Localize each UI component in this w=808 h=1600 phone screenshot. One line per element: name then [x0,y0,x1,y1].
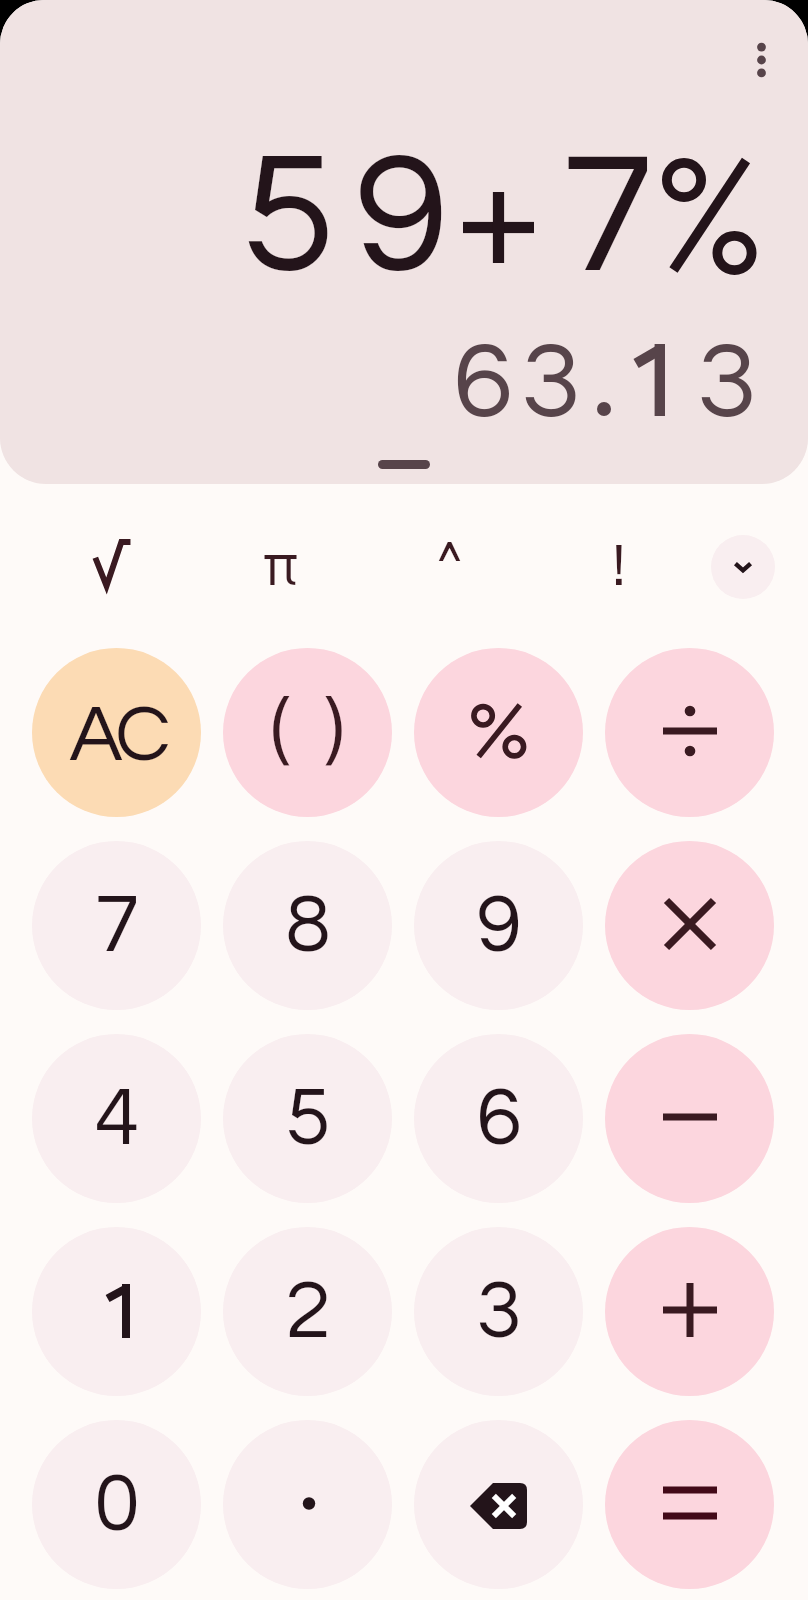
staticText: ! [612,536,626,598]
staticText: 6 [453,327,513,438]
button[interactable]: 2 [223,1227,392,1396]
button[interactable]: Show more functions [711,535,775,599]
button[interactable]: 7 [32,841,201,1010]
staticText: 4 [94,1077,140,1161]
button[interactable]: Multiply [605,841,774,1010]
button[interactable]: Percent [414,648,583,817]
button[interactable]: ^ [365,484,534,650]
staticText: 3 [697,327,757,438]
button[interactable]: 4 [32,1034,201,1203]
staticText: 8 [285,884,331,968]
button[interactable]: Add [605,1227,774,1396]
staticText: 5 [241,130,336,306]
button[interactable]: 9 [414,841,583,1010]
button[interactable]: Equals [605,1420,774,1589]
staticText: 3 [521,327,581,438]
button[interactable]: 8 [223,841,392,1010]
button[interactable]: π [196,484,365,650]
staticText: 0 [94,1463,140,1547]
staticText: 3 [476,1270,522,1354]
button[interactable]: 1 [32,1227,201,1396]
button[interactable]: ( ) [223,648,392,817]
staticText: 9 [476,884,522,968]
button[interactable]: Divide [605,648,774,817]
staticText: ( ) [270,686,353,771]
button[interactable]: More options [724,23,797,96]
staticText: ^ [434,534,465,596]
staticText: 7 [94,884,140,968]
button[interactable]: AC [32,648,201,817]
button[interactable]: 0 [32,1420,201,1589]
button[interactable]: 5 [223,1034,392,1203]
staticText: 2 [285,1270,331,1354]
button[interactable]: Backspace [414,1420,583,1589]
staticText: 9 [354,130,449,306]
button[interactable]: Subtract [605,1034,774,1203]
button[interactable]: Square root [26,484,196,650]
staticText: 5 [285,1077,331,1161]
staticText: 7 [560,130,655,306]
staticText: 6 [476,1077,522,1161]
button[interactable]: 6 [414,1034,583,1203]
button[interactable]: 3 [414,1227,583,1396]
staticText: AC [69,694,165,776]
staticText: π [263,536,298,598]
button[interactable]: Decimal point [223,1420,392,1589]
button[interactable]: ! [534,484,703,650]
